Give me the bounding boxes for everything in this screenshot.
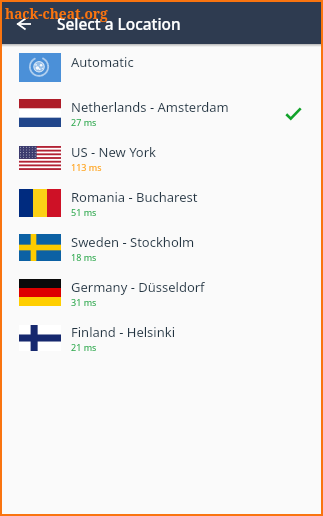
button[interactable]: Back — [11, 11, 37, 37]
staticText: 18 ms — [71, 251, 97, 263]
button[interactable]: Automatic — [2, 45, 321, 90]
staticText: Sweden - Stockholm — [71, 233, 195, 251]
button[interactable]: Finland - Helsinki — [2, 315, 321, 360]
staticText: Select a Location — [57, 14, 181, 35]
staticText: Finland - Helsinki — [71, 323, 175, 341]
staticText: hack-cheat.org — [5, 4, 108, 23]
staticText: Romania - Bucharest — [71, 188, 198, 206]
staticText: Netherlands - Amsterdam — [71, 98, 229, 116]
staticText: US - New York — [71, 143, 157, 161]
button[interactable]: Romania - Bucharest — [2, 180, 321, 225]
staticText: Germany - Düsseldorf — [71, 278, 205, 296]
staticText: 51 ms — [71, 206, 97, 218]
staticText: 21 ms — [71, 341, 97, 353]
staticText: 27 ms — [71, 116, 97, 128]
button[interactable]: Selected — [284, 104, 302, 122]
button[interactable]: Netherlands - Amsterdam — [2, 90, 321, 135]
staticText: 113 ms — [71, 161, 102, 173]
staticText: Automatic — [71, 53, 134, 71]
button[interactable]: Sweden - Stockholm — [2, 225, 321, 270]
button[interactable]: US - New York — [2, 135, 321, 180]
button[interactable]: Germany - Düsseldorf — [2, 270, 321, 315]
staticText: 31 ms — [71, 296, 97, 308]
